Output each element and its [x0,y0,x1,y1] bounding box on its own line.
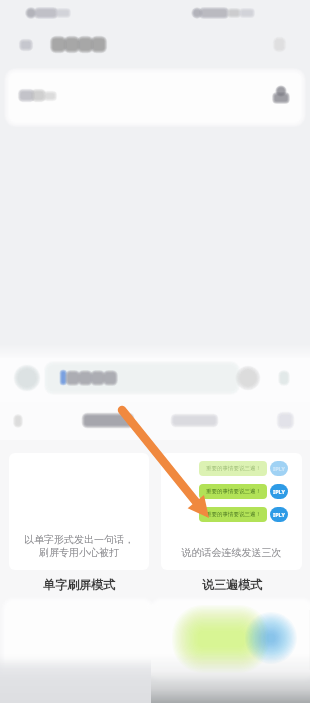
staticText: IPLY [273,465,285,472]
staticText: 以单字形式发出一句话， 刷屏专用小心被打 [9,533,149,559]
staticText: 重要的事情要说三遍！ [206,465,261,472]
staticText: 单字刷屏模式 [43,577,115,592]
staticText: IPLY [273,488,285,495]
button[interactable]: 重要的事情要说三遍！ [161,440,302,603]
staticText: IPLY [273,511,285,518]
button[interactable] [0,603,310,703]
staticText: 重要的事情要说三遍！ [206,511,261,518]
staticText: 重要的事情要说三遍！ [206,488,261,495]
staticText: 说三遍模式 [202,577,262,592]
button[interactable]: 以单字形式发出一句话， 刷屏专用小心被打 [9,440,149,603]
staticText: 说的话会连续发送三次 [161,546,302,559]
